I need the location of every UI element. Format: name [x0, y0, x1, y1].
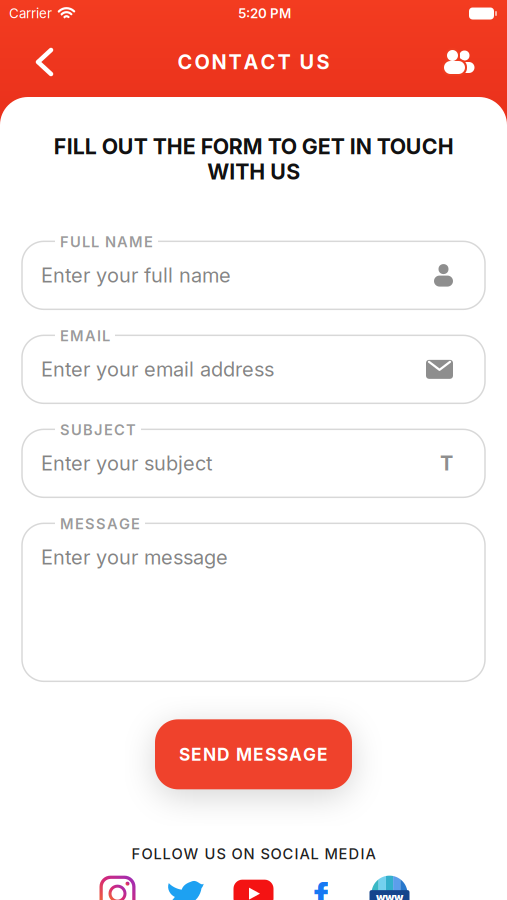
- staticText: www: [376, 891, 403, 900]
- staticText: 5:20 PM: [238, 6, 291, 21]
- staticText: Enter your email address: [41, 357, 274, 381]
- staticText: S U B J E C T: [60, 421, 136, 439]
- staticText: F O L L O W U S O N S O C I A L M E D I …: [131, 845, 375, 863]
- staticText: F U L L N A M E: [60, 233, 153, 251]
- button[interactable]: Website: [370, 875, 408, 900]
- staticText: S E N D M E S S A G E: [179, 744, 328, 764]
- button[interactable]: Contacts: [441, 36, 507, 88]
- button[interactable]: YouTube: [234, 875, 272, 900]
- staticText: M E S S A G E: [60, 515, 140, 533]
- button[interactable]: Twitter: [166, 875, 204, 900]
- staticText: C O N T A C T U S: [177, 50, 329, 74]
- staticText: T: [440, 451, 453, 475]
- staticText: Carrier: [9, 6, 52, 21]
- staticText: E M A I L: [60, 327, 110, 345]
- staticText: f: [314, 874, 329, 900]
- button[interactable]: Instagram: [98, 875, 136, 900]
- staticText: Enter your full name: [41, 263, 231, 287]
- button[interactable]: S E N D M E S S A G E: [155, 719, 352, 789]
- button[interactable]: Back: [0, 36, 51, 88]
- staticText: FILL OUT THE FORM TO GET IN TOUCH WITH U…: [53, 134, 453, 184]
- button[interactable]: Facebook: [302, 875, 340, 900]
- staticText: Enter your subject: [41, 451, 213, 475]
- staticText: Enter your message: [41, 545, 228, 569]
